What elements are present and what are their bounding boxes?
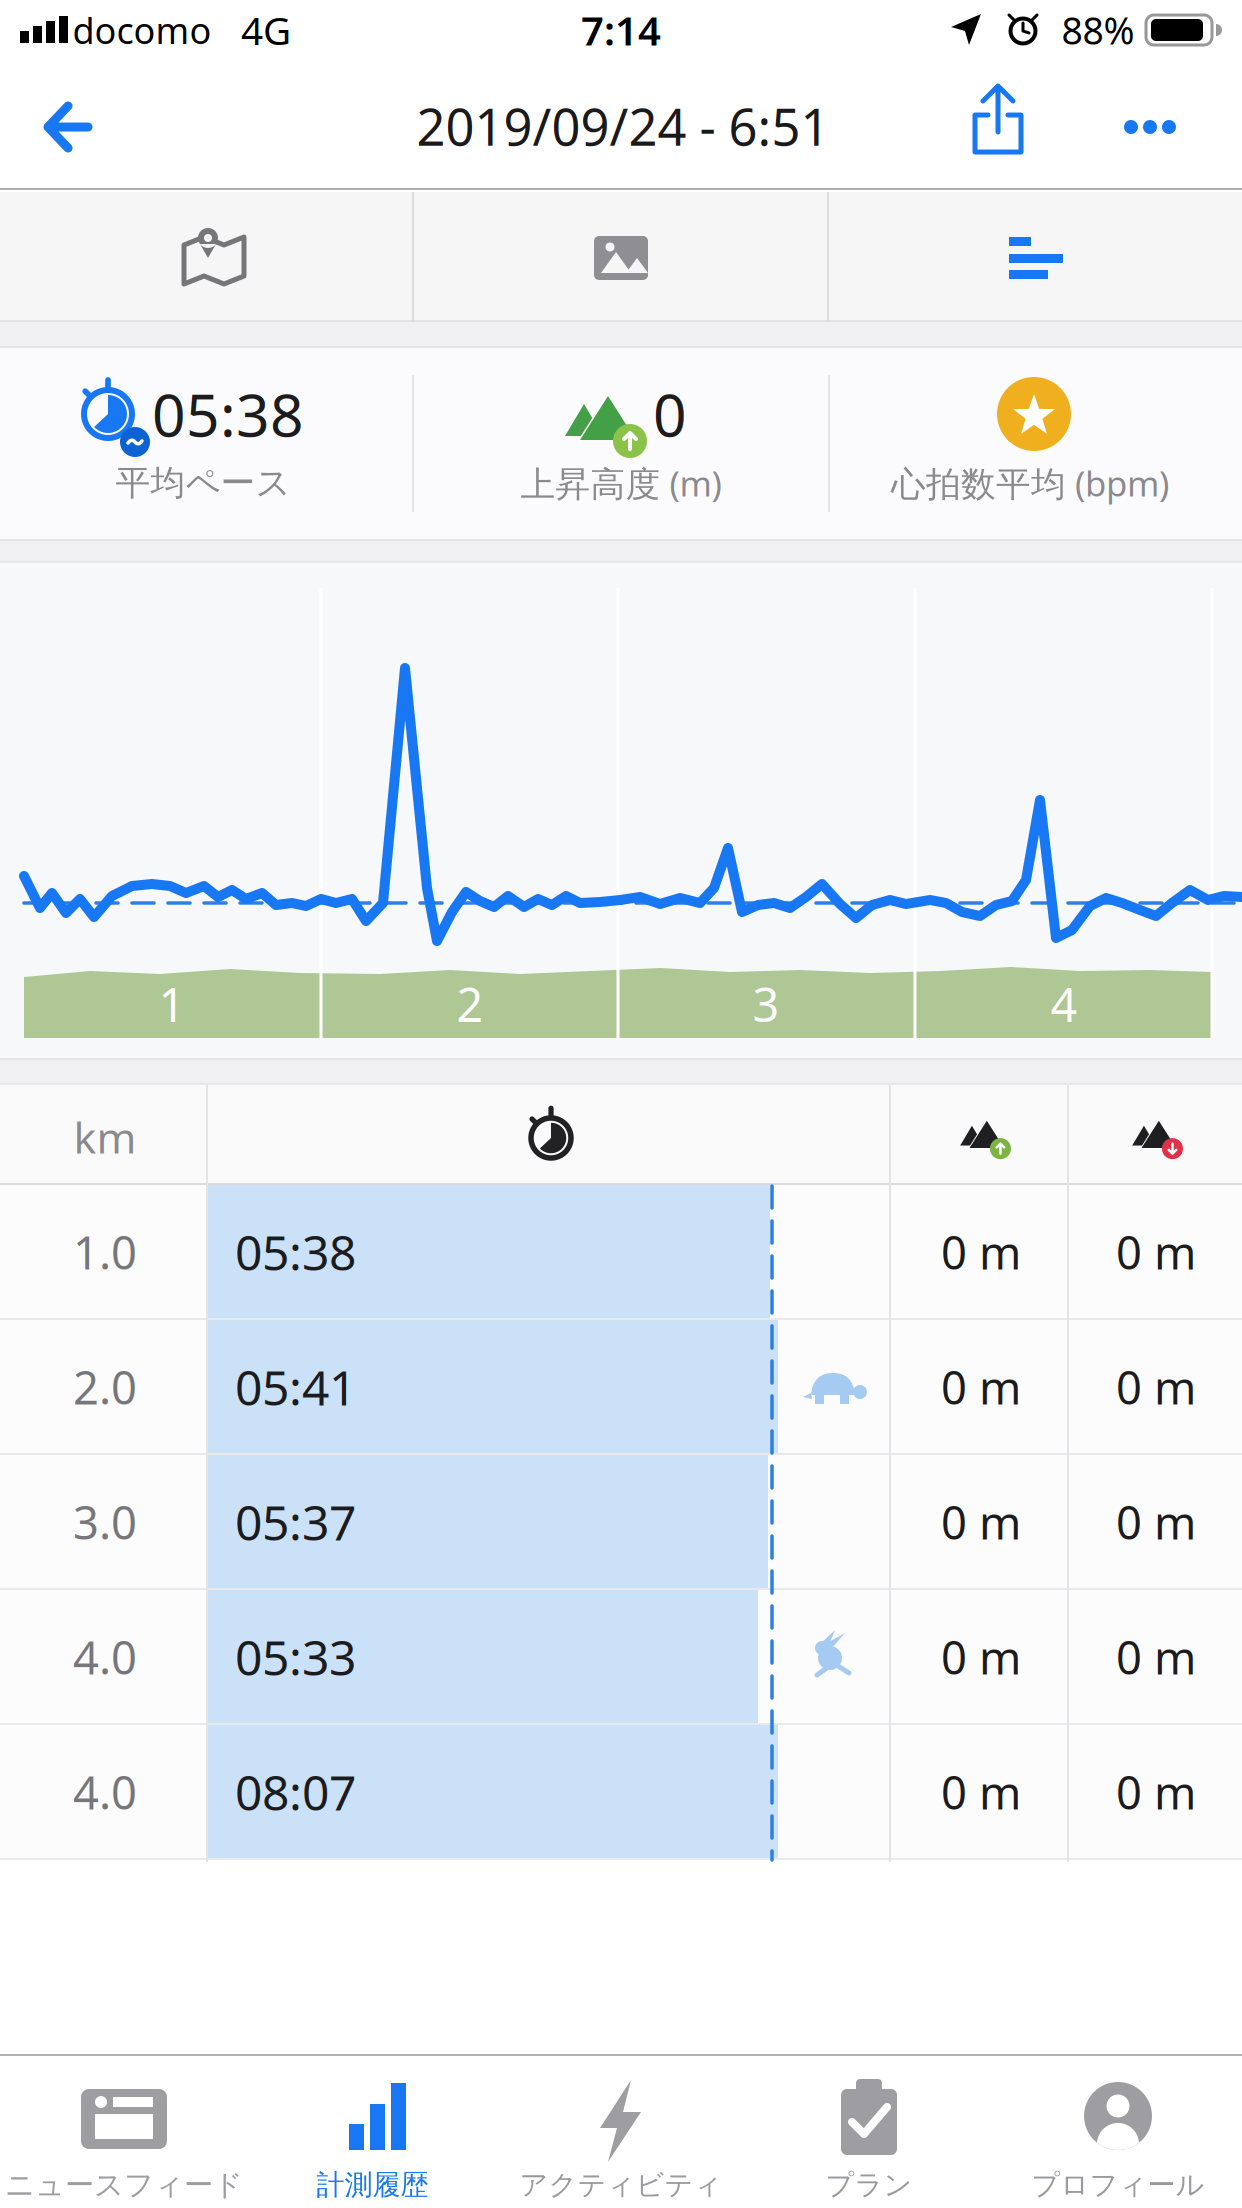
staticText: 0 m [941,1222,1021,1282]
staticText: 4.0 [73,1762,137,1822]
staticText: 05:33 [235,1625,356,1689]
button[interactable]: More [1105,82,1195,172]
staticText: 08:07 [235,1760,356,1824]
staticText: 1.0 [73,1222,137,1282]
staticText: 3 [752,973,779,1035]
staticText: 0 m [1116,1627,1196,1687]
button[interactable]: Splits [828,192,1242,322]
staticText: プロフィール [1031,2168,1204,2202]
staticText: 心拍数平均 (bpm) [891,460,1169,506]
button[interactable]: Photos [414,192,828,322]
button[interactable]: ニュースフィード [0,2056,248,2208]
button[interactable]: プロフィール [994,2056,1242,2208]
staticText: アクティビティ [519,2168,722,2202]
staticText: 2019/09/24 - 6:51 [416,92,829,160]
staticText: プラン [825,2168,912,2202]
staticText: 4.0 [73,1627,137,1687]
staticText: docomo [72,6,211,54]
staticText: 0 m [1116,1762,1196,1822]
staticText: ニュースフィード [5,2167,243,2203]
staticText: 平均ペース [115,462,290,504]
staticText: 4 [1050,973,1077,1035]
staticText: 0 m [941,1357,1021,1417]
staticText: km [73,1109,136,1165]
staticText: 2 [456,973,483,1035]
button[interactable]: プラン [745,2056,994,2208]
staticText: 計測履歴 [317,2168,429,2202]
staticText: 4G [241,4,291,56]
staticText: 2.0 [73,1357,137,1417]
button[interactable]: 計測履歴 [248,2056,497,2208]
staticText: 0 [653,375,687,453]
button[interactable]: Back [23,82,113,172]
staticText: 7:14 [581,3,661,56]
staticText: 0 m [1116,1492,1196,1552]
staticText: 05:38 [235,1220,356,1284]
button[interactable]: Map [0,192,414,322]
staticText: 05:37 [235,1490,356,1554]
staticText: 88% [1061,5,1134,55]
button[interactable]: Share [948,70,1048,170]
staticText: 0 m [1116,1222,1196,1282]
staticText: 05:41 [235,1355,356,1419]
staticText: 0 m [941,1492,1021,1552]
staticText: 05:38 [152,375,304,453]
button[interactable]: アクティビティ [497,2056,745,2208]
staticText: 3.0 [73,1492,137,1552]
staticText: 1 [158,973,185,1035]
staticText: 0 m [941,1627,1021,1687]
staticText: 0 m [1116,1357,1196,1417]
staticText: 上昇高度 (m) [520,460,721,506]
staticText: 0 m [941,1762,1021,1822]
